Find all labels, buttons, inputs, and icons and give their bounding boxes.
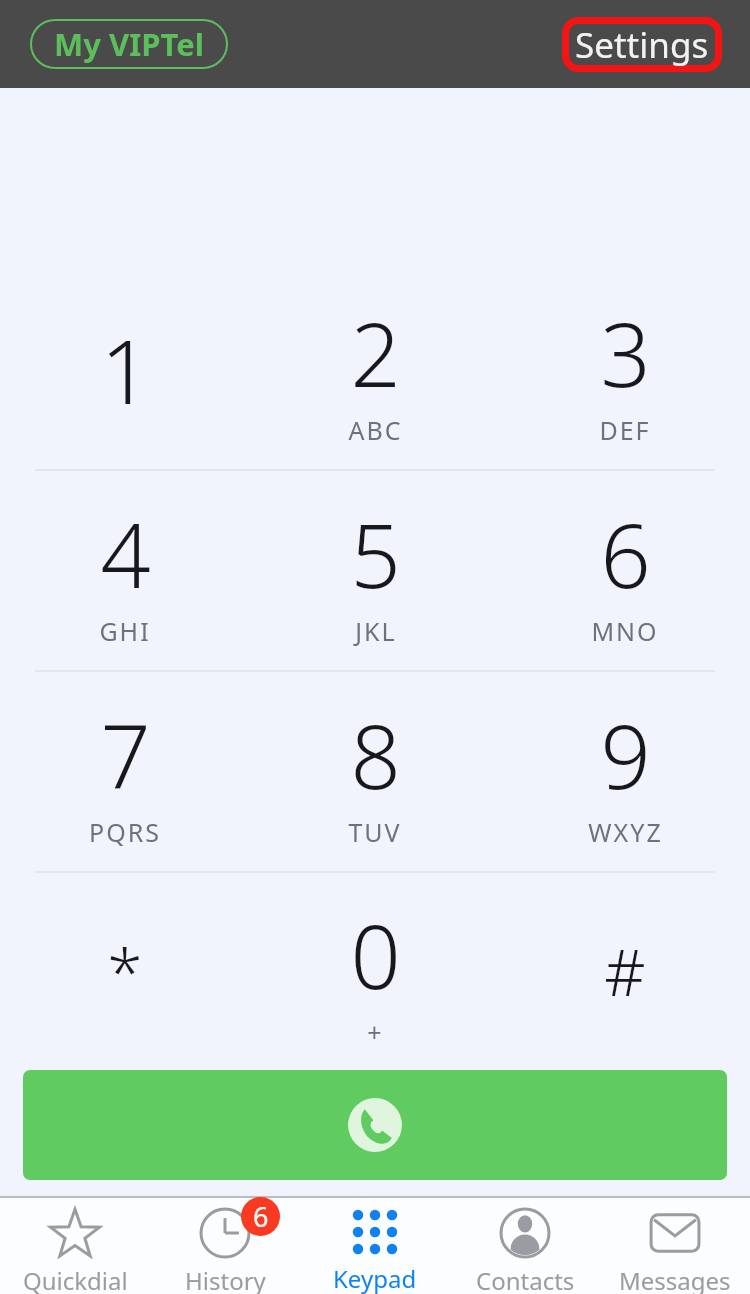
staticText: 1 — [100, 310, 151, 430]
staticText: # — [604, 928, 646, 1015]
staticText: TUV — [348, 815, 402, 849]
button[interactable]: # — [500, 873, 750, 1070]
staticText: Keypad — [333, 1262, 417, 1294]
staticText: 2 — [350, 293, 401, 413]
staticText: GHI — [99, 614, 151, 648]
staticText: 3 — [600, 293, 651, 413]
button[interactable]: My VIPTel — [30, 19, 228, 69]
staticText: + — [367, 1015, 384, 1049]
staticText: ABC — [348, 413, 403, 447]
staticText: MNO — [591, 614, 659, 648]
staticText: JKL — [355, 614, 397, 648]
staticText: PQRS — [89, 815, 161, 849]
staticText: WXYZ — [588, 815, 663, 849]
button[interactable]: Settings — [562, 17, 722, 72]
staticText: DEF — [599, 413, 651, 447]
button[interactable]: 9 — [500, 672, 750, 871]
staticText: * — [107, 928, 143, 1015]
button[interactable]: 5 — [250, 471, 500, 670]
button[interactable]: Keypad — [300, 1198, 450, 1294]
staticText: 6 — [253, 1198, 269, 1235]
button[interactable]: Contacts — [450, 1198, 600, 1294]
button[interactable]: 3 — [500, 270, 750, 469]
button[interactable]: 0 — [250, 873, 500, 1070]
button[interactable]: 1 — [0, 270, 250, 469]
staticText: My VIPTel — [54, 23, 204, 65]
staticText: History — [185, 1264, 266, 1294]
staticText: Settings — [575, 21, 709, 69]
staticText: Contacts — [476, 1264, 575, 1294]
button[interactable]: 4 — [0, 471, 250, 670]
staticText: 0 — [350, 895, 401, 1015]
staticText: 7 — [100, 695, 151, 815]
button[interactable]: 7 — [0, 672, 250, 871]
staticText: 8 — [350, 695, 401, 815]
button[interactable]: 8 — [250, 672, 500, 871]
button[interactable]: Messages — [600, 1198, 750, 1294]
button[interactable]: 2 — [250, 270, 500, 469]
staticText: 5 — [350, 494, 401, 614]
button[interactable]: Quickdial — [0, 1198, 150, 1294]
staticText: Quickdial — [23, 1264, 128, 1294]
button[interactable]: Call — [23, 1070, 727, 1180]
staticText: Messages — [619, 1264, 731, 1294]
button[interactable]: 6 — [150, 1198, 300, 1294]
staticText: 6 — [600, 494, 651, 614]
button[interactable]: * — [0, 873, 250, 1070]
button[interactable]: 6 — [500, 471, 750, 670]
staticText: 4 — [100, 494, 151, 614]
staticText: 9 — [600, 695, 651, 815]
